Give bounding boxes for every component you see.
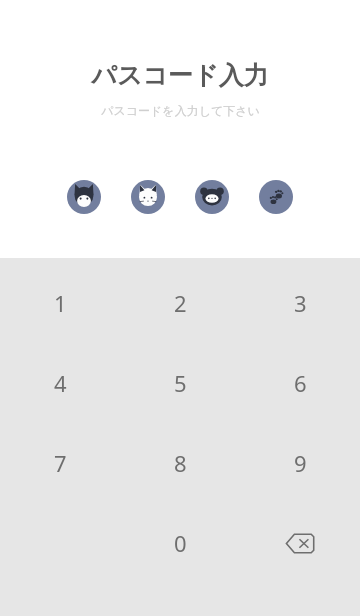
staticText: パスコードを入力して下さい [101, 103, 260, 118]
staticText: 5 [174, 368, 187, 398]
staticText: 2 [174, 288, 187, 318]
button[interactable]: Passcode digit 2 [131, 180, 165, 214]
staticText: 6 [294, 368, 307, 398]
button[interactable]: 7 [0, 443, 120, 483]
button[interactable]: Passcode digit 1 [67, 180, 101, 214]
button[interactable]: 1 [0, 283, 120, 323]
button[interactable]: Backspace [240, 523, 360, 563]
staticText: 9 [294, 448, 307, 478]
button[interactable]: 6 [240, 363, 360, 403]
button[interactable]: 3 [240, 283, 360, 323]
staticText: 7 [54, 448, 67, 478]
staticText: 8 [174, 448, 187, 478]
staticText: 0 [174, 528, 187, 558]
staticText: パスコード入力 [91, 60, 269, 91]
staticText: 4 [54, 368, 67, 398]
button[interactable]: 4 [0, 363, 120, 403]
button[interactable]: 8 [120, 443, 240, 483]
button[interactable]: 2 [120, 283, 240, 323]
button[interactable]: Passcode digit 4 [259, 180, 293, 214]
button[interactable]: 0 [120, 523, 240, 563]
staticText: 3 [294, 288, 307, 318]
button[interactable]: Passcode digit 3 [195, 180, 229, 214]
staticText: 1 [54, 288, 67, 318]
button[interactable]: 5 [120, 363, 240, 403]
button[interactable]: 9 [240, 443, 360, 483]
